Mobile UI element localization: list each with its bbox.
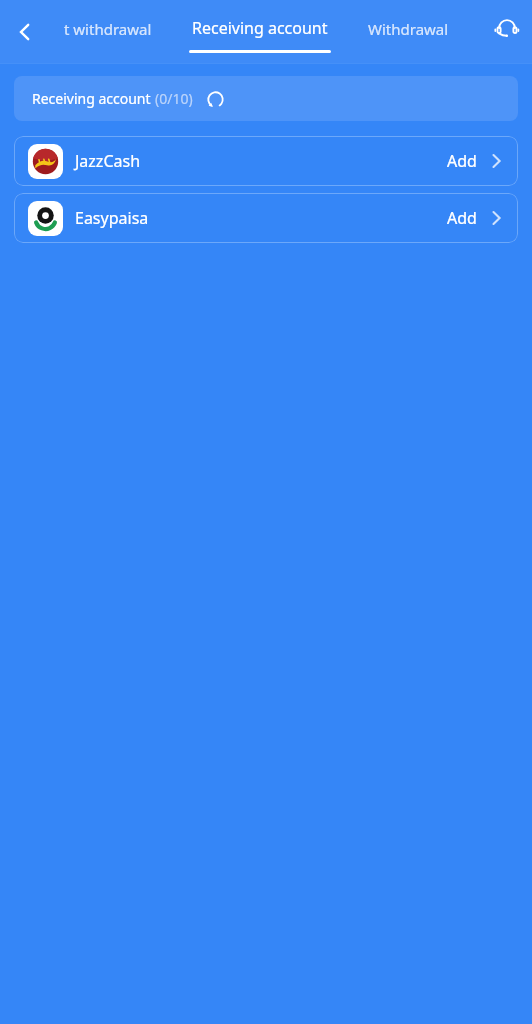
staticText: t withdrawal xyxy=(64,19,152,39)
staticText: JazzCash xyxy=(75,150,141,172)
button[interactable]: Receiving account xyxy=(182,0,338,64)
button[interactable]: Back xyxy=(4,11,46,53)
button[interactable]: Refresh xyxy=(202,86,228,112)
button[interactable]: Withdrawal xyxy=(360,5,457,53)
staticText: Withdrawal xyxy=(368,19,449,39)
staticText: Add xyxy=(447,150,477,172)
button[interactable]: Customer support xyxy=(485,7,529,51)
button[interactable]: t withdrawal xyxy=(52,5,164,53)
button[interactable]: Receiving account xyxy=(14,76,518,121)
staticText: (0/10) xyxy=(155,89,193,108)
button[interactable]: Easypaisa xyxy=(14,193,518,243)
staticText: Receiving account xyxy=(32,89,155,108)
staticText: Easypaisa xyxy=(75,207,149,229)
button[interactable]: JazzCash xyxy=(14,136,518,186)
staticText: Add xyxy=(447,207,477,229)
staticText: Receiving account xyxy=(192,17,328,39)
